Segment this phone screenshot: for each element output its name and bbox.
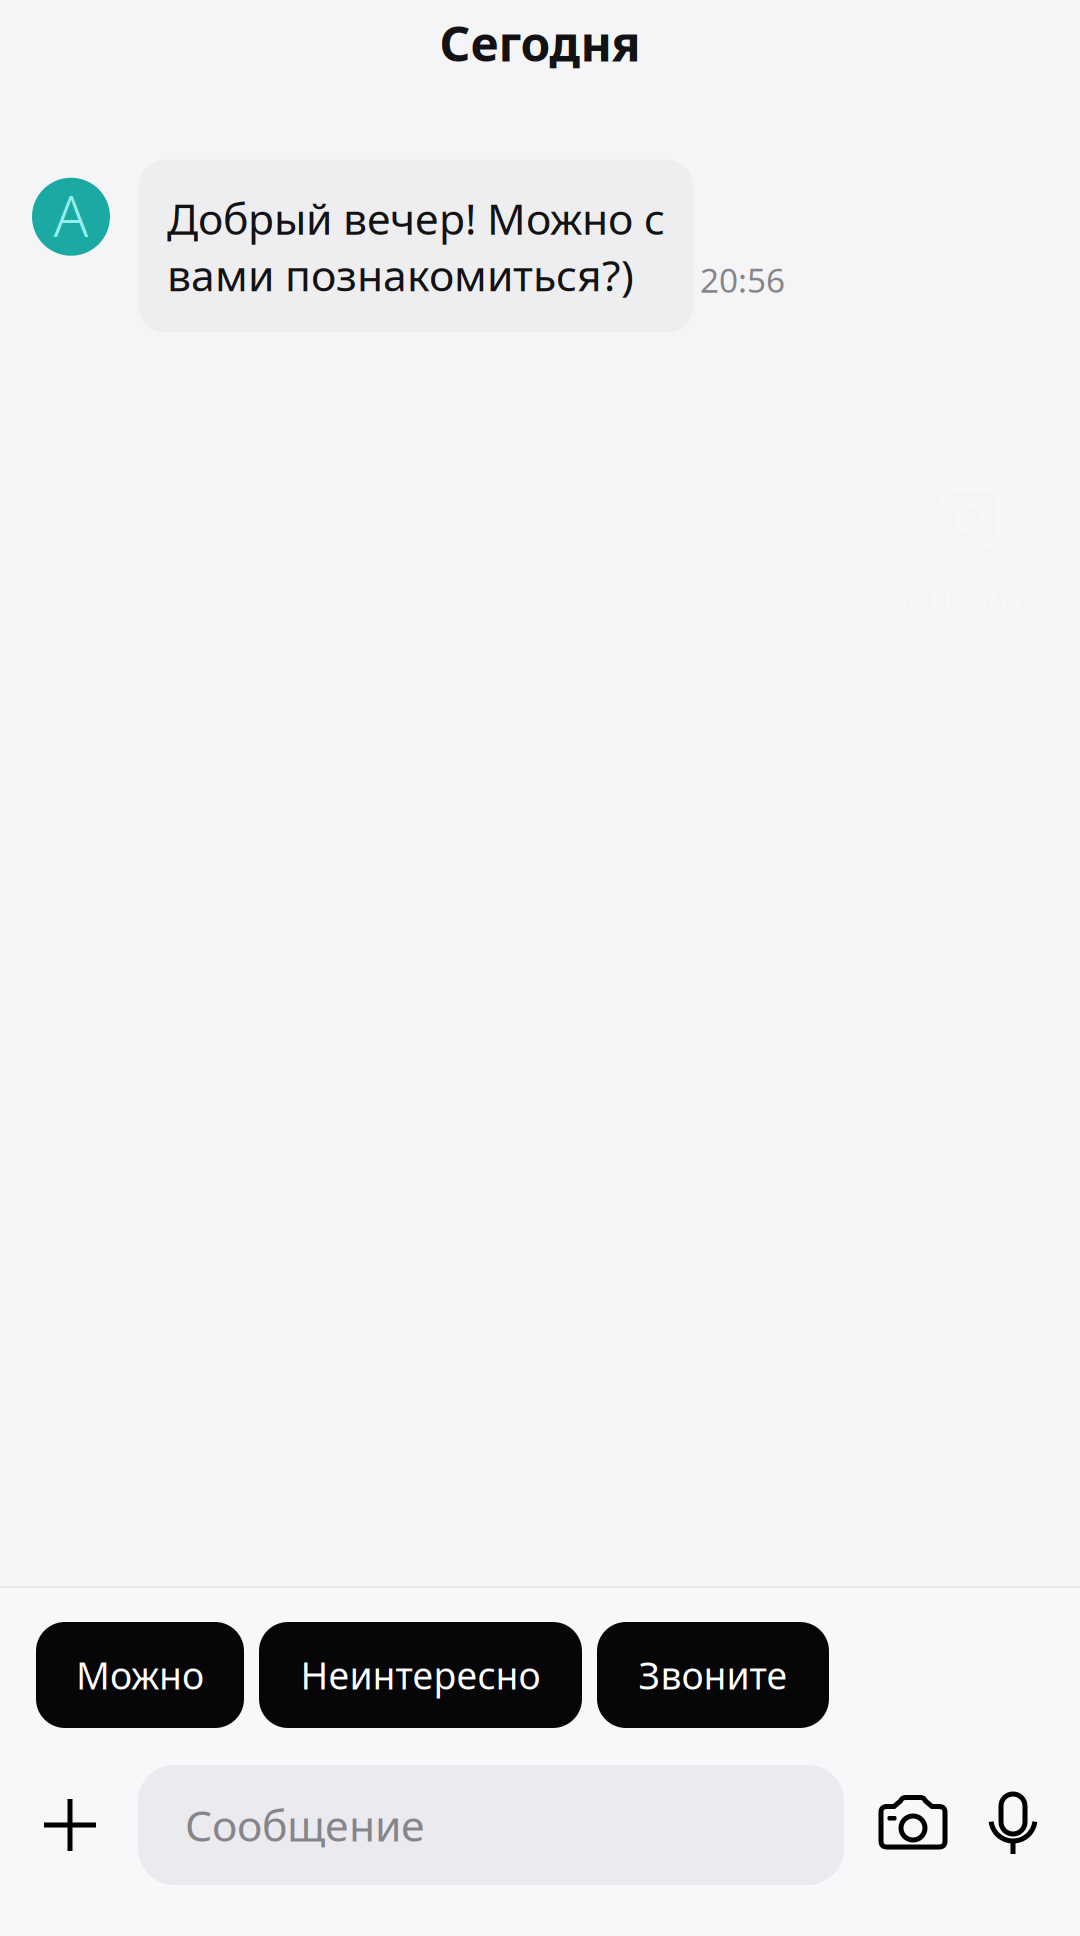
button[interactable]: Record voice message [970,1765,1056,1885]
staticText: Неинтересно [300,1650,540,1700]
staticText: Сообщение [185,1797,425,1853]
staticText: 20:56 [700,258,785,302]
button[interactable]: Неинтересно [259,1622,582,1728]
button[interactable]: Sender profile [32,178,110,256]
button[interactable]: Camera [863,1765,963,1885]
button[interactable]: Можно [36,1622,244,1728]
staticText: Добрый вечер! Можно с вами познакомиться… [167,190,665,303]
button[interactable]: Add attachment [22,1765,118,1885]
staticText: A [53,177,88,253]
staticText: Сегодня [439,11,640,75]
button[interactable]: Добрый вечер! Можно с вами познакомиться… [139,160,693,332]
staticText: Можно [76,1650,204,1700]
staticText: Звоните [638,1650,787,1700]
button[interactable]: Звоните [597,1622,829,1728]
